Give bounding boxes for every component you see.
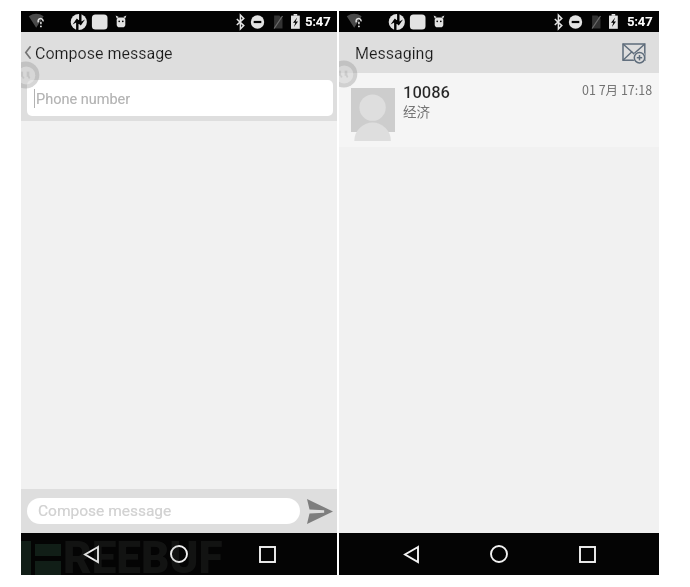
button[interactable]: Home <box>455 533 543 575</box>
staticText: Compose message <box>35 44 173 63</box>
staticText: Compose message <box>38 502 172 520</box>
button[interactable]: 10086 <box>339 73 659 147</box>
staticText: 经济 <box>403 101 430 121</box>
button[interactable]: Back <box>21 32 35 73</box>
staticText: 5:47 <box>627 14 653 29</box>
button[interactable]: Back <box>47 533 135 575</box>
button[interactable]: New message <box>615 33 657 74</box>
button[interactable]: Phone number <box>27 80 333 116</box>
staticText: Messaging <box>355 44 434 63</box>
button[interactable]: Recents <box>223 533 311 575</box>
button[interactable]: Send <box>300 489 333 533</box>
staticText: Phone number <box>36 91 131 108</box>
button[interactable]: Back <box>367 533 455 575</box>
button[interactable]: Recents <box>543 533 631 575</box>
button[interactable]: Home <box>135 533 223 575</box>
staticText: 01 7月 17:18 <box>582 80 653 98</box>
staticText: REEBUF <box>63 532 223 576</box>
button[interactable]: Compose message <box>27 498 300 524</box>
staticText: 5:47 <box>305 14 331 29</box>
staticText: 10086 <box>403 83 450 102</box>
